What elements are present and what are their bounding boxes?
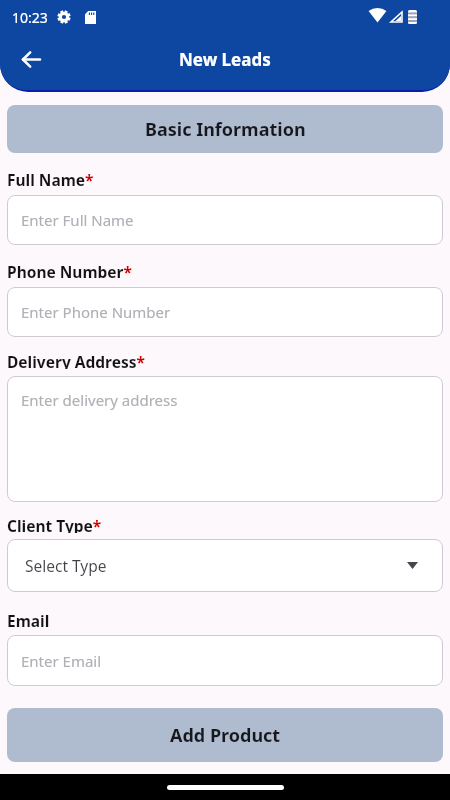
staticText: Delivery Address*: [7, 351, 145, 369]
staticText: Select Type: [25, 555, 107, 576]
button[interactable]: Basic Information: [7, 105, 443, 153]
button[interactable]: Enter Phone Number: [7, 287, 443, 337]
button[interactable]: [13, 41, 49, 77]
button[interactable]: Enter Full Name: [7, 195, 443, 245]
staticText: 10:23: [12, 8, 48, 27]
staticText: Enter Phone Number: [21, 302, 171, 322]
button[interactable]: Enter delivery address: [7, 376, 443, 502]
staticText: Phone Number*: [7, 261, 132, 279]
button[interactable]: Select Type: [7, 539, 443, 592]
staticText: Enter Full Name: [21, 210, 134, 230]
staticText: Client Type*: [7, 515, 102, 533]
staticText: Full Name*: [7, 169, 94, 187]
staticText: New Leads: [179, 48, 271, 71]
staticText: Add Product: [170, 723, 281, 748]
button[interactable]: Enter Email: [7, 635, 443, 686]
staticText: Email: [7, 610, 50, 628]
staticText: Enter delivery address: [21, 390, 178, 410]
button[interactable]: Add Product: [7, 708, 443, 762]
staticText: Basic Information: [145, 117, 306, 142]
staticText: Enter Email: [21, 651, 102, 671]
